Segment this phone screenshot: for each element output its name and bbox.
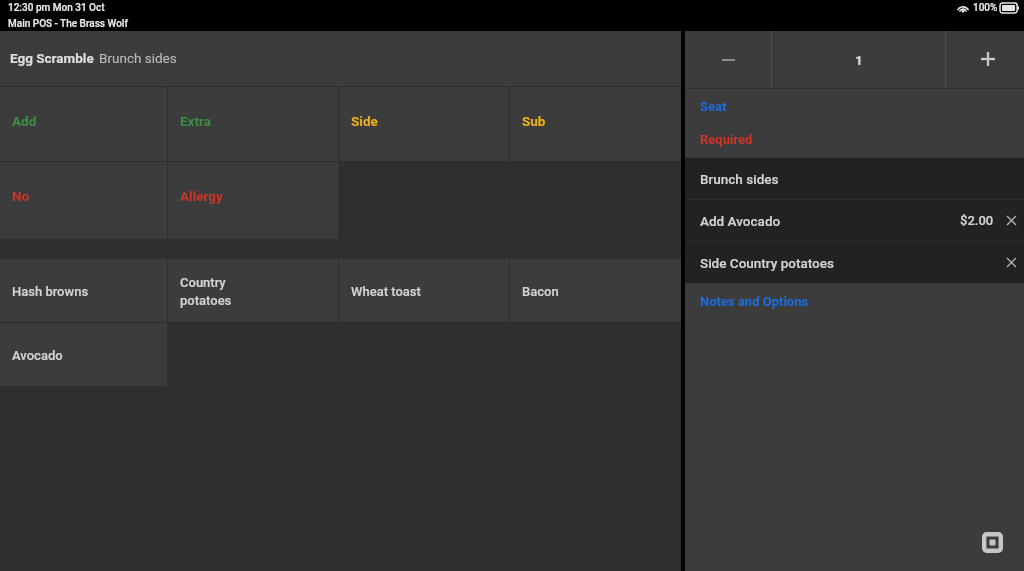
other: Wi-Fi bbox=[957, 4, 969, 13]
staticText: 100% bbox=[973, 2, 998, 14]
other: Battery 100 percent bbox=[1000, 3, 1019, 13]
staticText: Add Avocado bbox=[700, 213, 781, 229]
button[interactable]: Sub bbox=[510, 87, 681, 161]
button[interactable]: Remove Side Country potatoes bbox=[999, 242, 1024, 283]
staticText: Notes and Options bbox=[700, 294, 809, 309]
staticText: Brunch sides bbox=[99, 50, 177, 66]
staticText: Required bbox=[700, 132, 753, 147]
button[interactable]: 1 bbox=[772, 31, 945, 88]
button[interactable]: Side bbox=[339, 87, 509, 161]
button[interactable]: Side Country potatoes bbox=[685, 242, 1024, 283]
button[interactable]: Extra bbox=[168, 87, 338, 161]
staticText: 1 bbox=[855, 52, 863, 68]
button[interactable]: Add Avocado bbox=[685, 200, 1024, 241]
button[interactable]: No bbox=[0, 162, 167, 239]
staticText: No bbox=[12, 188, 30, 204]
button[interactable]: Wheat toast bbox=[339, 259, 509, 322]
staticText: Side bbox=[351, 113, 378, 129]
button[interactable]: Add bbox=[0, 87, 167, 161]
button[interactable]: Brunch sides bbox=[685, 158, 1024, 199]
button[interactable]: Country potatoes bbox=[168, 259, 338, 322]
button[interactable]: Avocado bbox=[0, 323, 167, 386]
staticText: Side Country potatoes bbox=[700, 255, 834, 271]
staticText: Bacon bbox=[522, 284, 559, 299]
staticText: Avocado bbox=[12, 348, 63, 363]
button[interactable]: Seat bbox=[685, 89, 1024, 123]
button[interactable]: Egg Scramble bbox=[0, 31, 681, 86]
staticText: Wheat toast bbox=[351, 284, 421, 299]
button[interactable]: Increase quantity bbox=[946, 31, 1024, 88]
button[interactable]: Notes and Options bbox=[685, 283, 1024, 320]
staticText: Seat bbox=[700, 99, 727, 114]
staticText: Brunch sides bbox=[700, 171, 779, 187]
staticText: Egg Scramble bbox=[10, 50, 94, 66]
button[interactable]: Remove Add Avocado bbox=[999, 200, 1024, 241]
staticText: Main POS - The Brass Wolf bbox=[8, 18, 128, 30]
staticText: Add bbox=[12, 113, 37, 129]
staticText: Sub bbox=[522, 113, 546, 129]
staticText: Extra bbox=[180, 113, 212, 129]
button[interactable]: Square bbox=[982, 532, 1003, 553]
staticText: $2.00 bbox=[960, 213, 994, 228]
staticText: 12:30 pm Mon 31 Oct bbox=[8, 2, 105, 14]
staticText: Allergy bbox=[180, 188, 223, 204]
button[interactable]: Hash browns bbox=[0, 259, 167, 322]
button[interactable]: Decrease quantity bbox=[685, 31, 771, 88]
button[interactable]: Bacon bbox=[510, 259, 681, 322]
staticText: Hash browns bbox=[12, 284, 89, 299]
button[interactable]: Allergy bbox=[168, 162, 338, 239]
staticText: Country potatoes bbox=[180, 275, 232, 308]
